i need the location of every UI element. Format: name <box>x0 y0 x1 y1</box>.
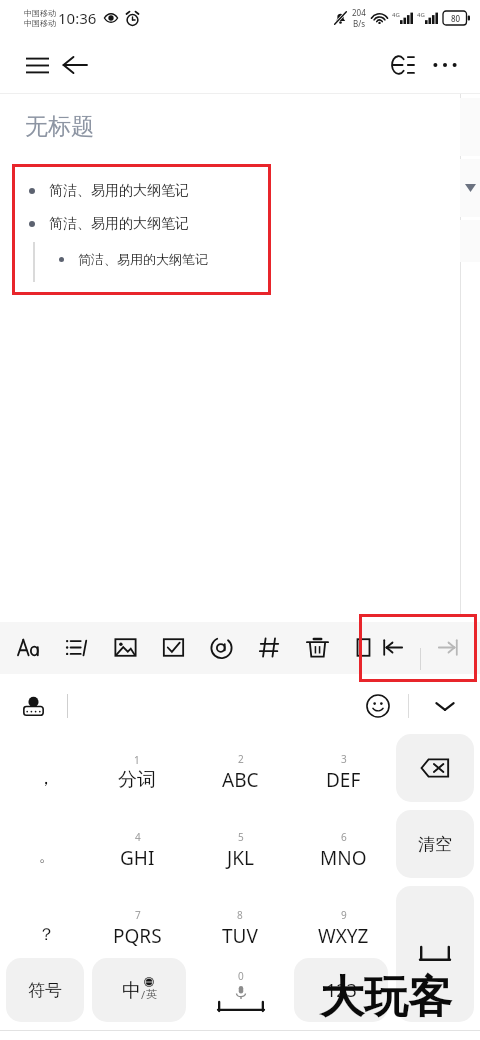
button[interactable]: More options <box>426 46 464 84</box>
button[interactable]: Outdent <box>371 626 413 668</box>
staticText: 简洁、易用的大纲笔记 <box>49 182 189 200</box>
button[interactable]: 简洁、易用的大纲笔记 <box>17 177 266 205</box>
button[interactable]: Hide keyboard <box>425 686 465 726</box>
button[interactable]: 4 <box>89 816 185 884</box>
button[interactable]: 。 <box>20 830 72 882</box>
staticText: 0 <box>238 969 244 983</box>
staticText: ？ <box>38 924 55 945</box>
button[interactable]: 简洁、易用的大纲笔记 <box>17 210 266 238</box>
button[interactable]: Back <box>56 46 94 84</box>
staticText: 3 <box>341 752 347 766</box>
button[interactable]: Tag <box>248 626 290 668</box>
button[interactable]: Mention <box>200 626 242 668</box>
staticText: TUV <box>222 923 258 949</box>
staticText: 6 <box>341 830 347 844</box>
button[interactable]: Numbers <box>294 958 388 1022</box>
button[interactable]: 5 <box>192 816 288 884</box>
button[interactable]: Bullet list <box>56 626 98 668</box>
staticText: 204 <box>352 7 366 18</box>
button[interactable]: Clear all <box>396 810 474 878</box>
button[interactable]: Collapse outline <box>460 159 480 217</box>
button[interactable]: Delete <box>296 626 338 668</box>
staticText: 4G <box>392 11 400 19</box>
staticText: 9 <box>341 908 347 922</box>
staticText: 简洁、易用的大纲笔记 <box>49 215 189 233</box>
button[interactable]: Emoji <box>358 686 398 726</box>
staticText: MNO <box>320 845 367 871</box>
button[interactable]: Font style <box>8 626 50 668</box>
staticText: ！ <box>38 993 55 1014</box>
button[interactable]: Outline view <box>384 46 422 84</box>
button[interactable]: ！ <box>20 977 72 1029</box>
staticText: JKL <box>227 845 254 871</box>
staticText: GHI <box>120 845 155 871</box>
button[interactable]: 9 <box>295 894 391 962</box>
staticText: 中国移动 <box>24 8 56 18</box>
staticText: 1 <box>134 753 140 767</box>
button[interactable]: Indent <box>427 626 469 668</box>
staticText: 简洁、易用的大纲笔记 <box>78 251 208 267</box>
button[interactable]: 无标题 <box>25 112 94 141</box>
button[interactable]: Symbols <box>6 958 84 1022</box>
staticText: 符号 <box>28 980 62 1001</box>
staticText: 4G <box>417 11 425 19</box>
staticText: 4 <box>135 830 141 844</box>
button[interactable]: 6 <box>295 816 391 884</box>
button[interactable]: 1 <box>89 738 185 806</box>
staticText: 中国移动 <box>24 18 56 28</box>
staticText: ABC <box>222 767 259 793</box>
staticText: DEF <box>326 767 361 793</box>
button[interactable]: Switch input method <box>14 687 52 725</box>
staticText: 5 <box>238 830 244 844</box>
button[interactable]: 简洁、易用的大纲笔记 <box>47 245 296 273</box>
staticText: 123 <box>326 978 357 1003</box>
button[interactable]: 2 <box>192 738 288 806</box>
staticText: ， <box>37 767 55 790</box>
staticText: 80 <box>451 13 461 24</box>
staticText: 10:36 <box>58 8 97 28</box>
button[interactable]: ？ <box>20 908 72 960</box>
button[interactable]: Note <box>342 626 384 668</box>
staticText: B/s <box>353 18 366 29</box>
staticText: 7 <box>135 908 141 922</box>
staticText: 英 <box>146 987 157 1001</box>
staticText: WXYZ <box>318 923 369 949</box>
staticText: 2 <box>238 752 244 766</box>
button[interactable]: Backspace <box>396 734 474 802</box>
button[interactable]: Insert image <box>104 626 146 668</box>
staticText: 8 <box>237 908 243 922</box>
button[interactable]: 3 <box>295 738 391 806</box>
button[interactable]: Enter <box>396 886 474 1022</box>
staticText: 分词 <box>118 768 156 792</box>
staticText: PQRS <box>113 923 162 949</box>
button[interactable]: 7 <box>89 894 185 962</box>
button[interactable]: Menu <box>18 46 56 84</box>
button[interactable]: Checklist <box>152 626 194 668</box>
staticText: / <box>141 987 146 1002</box>
staticText: 中 <box>122 979 141 1003</box>
staticText: 清空 <box>418 834 452 855</box>
button[interactable]: 8 <box>192 894 288 962</box>
staticText: 大玩客 <box>320 970 452 1025</box>
staticText: 。 <box>39 847 54 866</box>
button[interactable]: ， <box>20 752 72 804</box>
button[interactable]: Chinese English toggle <box>92 958 186 1022</box>
button[interactable]: Space <box>196 958 286 1022</box>
